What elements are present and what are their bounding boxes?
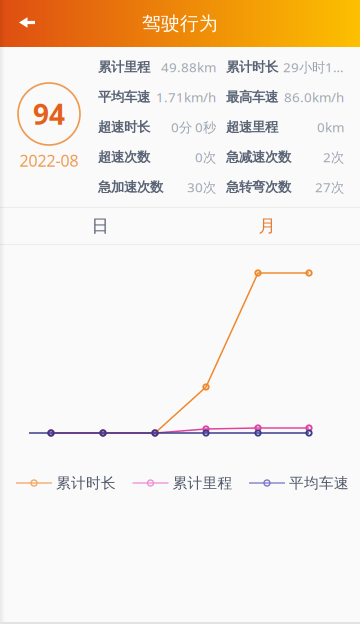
staticText: 急减速次数 [226,149,291,165]
staticText: 超速时长 [98,119,150,135]
staticText: 0km [317,118,344,136]
staticText: 累计里程 [172,474,232,492]
staticText: 急加速次数 [98,179,163,195]
staticText: 累计时长 [56,474,116,492]
staticText: 急转弯次数 [226,179,291,195]
staticText: 累计里程 [98,59,150,75]
staticText: 超速次数 [98,149,150,165]
staticText: 平均车速 [289,474,349,492]
staticText: 2022-08 [19,150,78,171]
staticText: 0次 [195,148,216,166]
staticText: 27次 [315,178,344,196]
staticText: 1.71km/h [156,88,216,106]
button[interactable]: 月 [200,208,360,244]
staticText: 49.88km [161,58,216,76]
staticText: 29小时1… [283,58,344,76]
button[interactable]: Back [0,0,180,47]
staticText: 超速里程 [226,119,278,135]
staticText: 日 [91,215,108,237]
button[interactable]: 日 [0,208,200,244]
staticText: 月 [258,215,275,237]
staticText: 86.0km/h [284,88,344,106]
staticText: 94 [33,95,65,133]
staticText: 0分 0秒 [171,118,216,136]
staticText: 累计时长 [226,59,278,75]
staticText: 平均车速 [98,89,150,105]
staticText: 最高车速 [226,89,278,105]
staticText: 2次 [323,148,344,166]
staticText: 驾驶行为 [142,12,218,35]
staticText: 30次 [187,178,216,196]
